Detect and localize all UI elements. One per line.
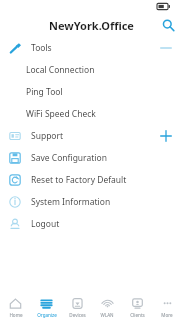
button[interactable]: Save Configuration — [0, 147, 182, 169]
staticText: WLAN — [100, 312, 114, 318]
staticText: Tools — [31, 42, 52, 54]
staticText: Logout — [31, 218, 60, 230]
staticText: Organize — [37, 312, 57, 318]
button[interactable]: Clients — [122, 293, 152, 321]
button[interactable]: Tools — [0, 37, 182, 59]
button[interactable]: System Information — [0, 191, 182, 213]
button[interactable]: Reset to Factory Default — [0, 169, 182, 191]
staticText: Ping Tool — [26, 86, 63, 98]
button[interactable]: Ping Tool — [0, 81, 182, 103]
staticText: WiFi Speed Check — [26, 108, 96, 120]
staticText: Save Configuration — [31, 152, 107, 164]
button[interactable]: Home — [0, 293, 31, 321]
button[interactable]: Local Connection — [0, 59, 182, 81]
staticText: Support — [31, 130, 64, 142]
staticText: Local Connection — [26, 64, 95, 76]
staticText: Reset to Factory Default — [31, 174, 127, 186]
button[interactable]: Search — [158, 15, 178, 35]
staticText: System Information — [31, 196, 111, 208]
button[interactable]: WiFi Speed Check — [0, 103, 182, 125]
button[interactable]: WLAN — [92, 293, 122, 321]
button[interactable]: Support — [0, 125, 182, 147]
staticText: Clients — [130, 312, 145, 318]
staticText: Home — [9, 312, 23, 318]
staticText: NewYork.Office — [49, 18, 134, 33]
staticText: Devices — [69, 312, 86, 318]
button[interactable]: Logout — [0, 213, 182, 235]
staticText: More — [161, 312, 173, 318]
button[interactable]: More — [152, 293, 182, 321]
button[interactable]: Devices — [62, 293, 92, 321]
button[interactable]: Organize — [31, 293, 62, 321]
